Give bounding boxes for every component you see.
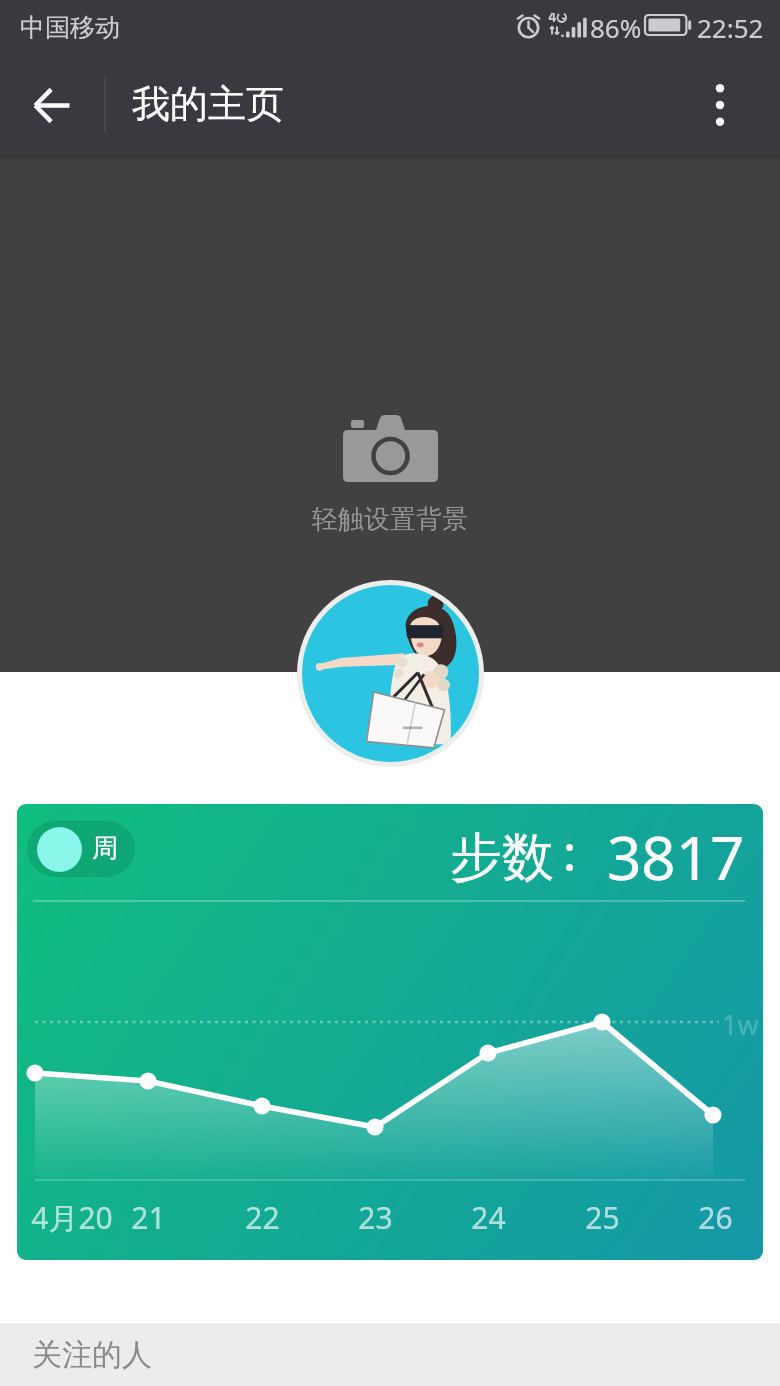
staticText: 26 <box>698 1197 733 1238</box>
button[interactable]: More options <box>676 61 764 149</box>
staticText: 25 <box>585 1197 620 1238</box>
button[interactable]: Set background <box>0 415 780 536</box>
staticText: 22:52 <box>697 10 764 45</box>
staticText: 3817 <box>607 816 745 898</box>
staticText: 中国移动 <box>20 12 120 43</box>
staticText: 1w <box>722 1006 759 1043</box>
staticText: 关注的人 <box>32 1336 152 1374</box>
staticText: 轻触设置背景 <box>312 503 468 536</box>
staticText: 我的主页 <box>132 80 284 128</box>
staticText: 周 <box>92 832 118 865</box>
button[interactable]: 周 <box>27 821 135 877</box>
staticText: 21 <box>131 1197 166 1238</box>
staticText: 22 <box>245 1197 280 1238</box>
button[interactable]: 周 <box>17 804 763 1260</box>
staticText: 24 <box>471 1197 506 1238</box>
button[interactable]: Back <box>7 61 96 150</box>
staticText: 步数 <box>450 825 554 891</box>
staticText: 4月20 <box>31 1197 113 1238</box>
button[interactable]: 关注的人 <box>0 1323 780 1386</box>
staticText: 23 <box>358 1197 393 1238</box>
staticText: 86% <box>590 10 642 45</box>
button[interactable]: Profile photo <box>302 585 479 762</box>
